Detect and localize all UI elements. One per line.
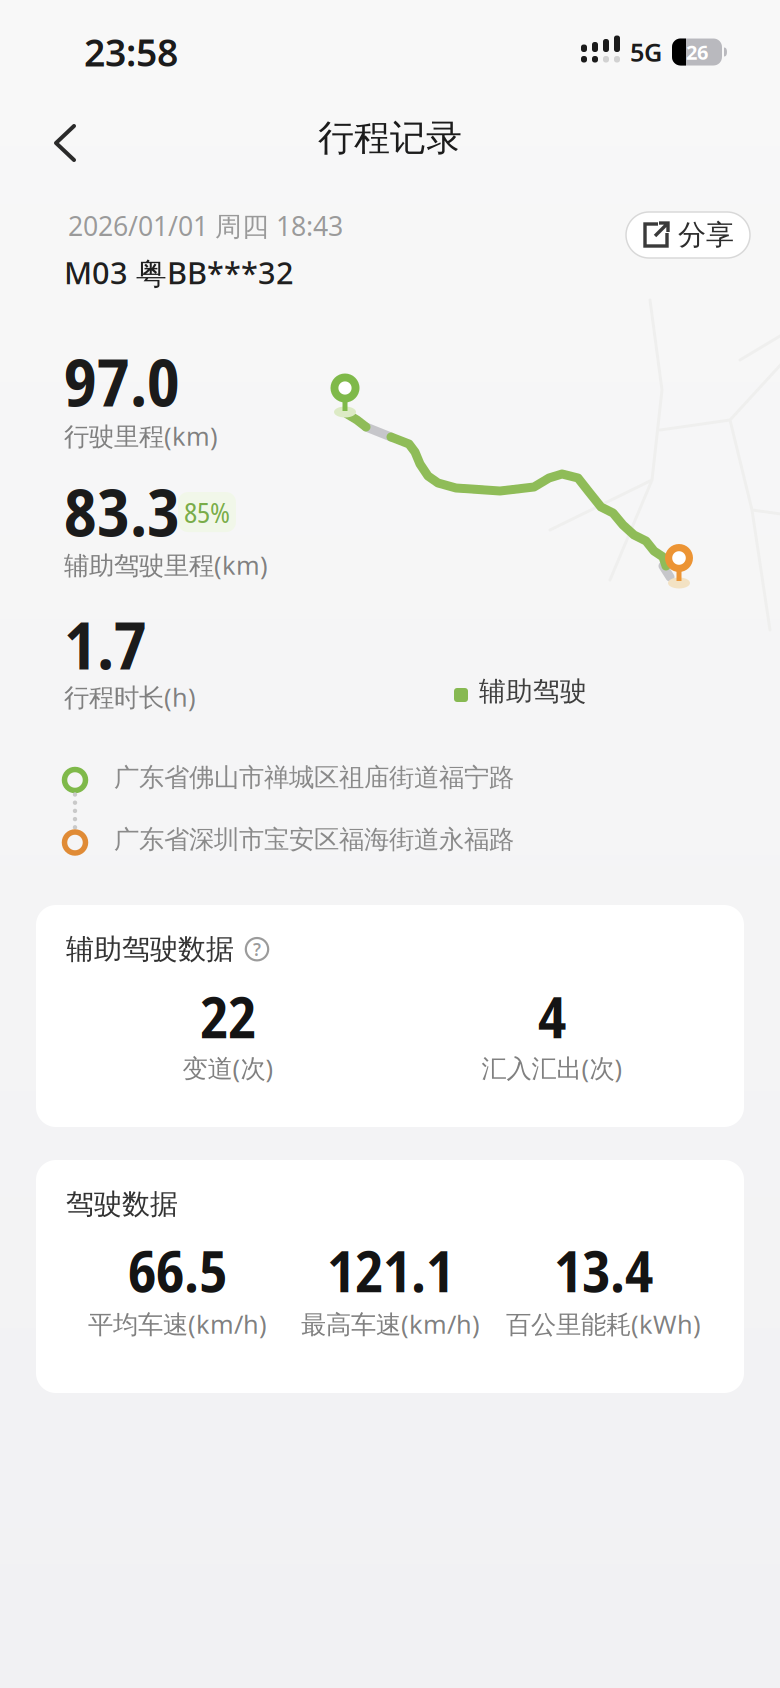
staticText: 平均车速(km/h): [88, 1307, 267, 1341]
staticText: 4: [538, 977, 566, 1055]
staticText: 最高车速(km/h): [301, 1307, 480, 1341]
staticText: 22: [200, 977, 256, 1055]
staticText: 广东省佛山市禅城区祖庙街道福宁路: [114, 762, 514, 793]
staticText: 1.7: [64, 599, 147, 689]
staticText: 汇入汇出(次): [481, 1051, 622, 1085]
staticText: 分享: [678, 218, 734, 252]
staticText: 85%: [184, 493, 230, 531]
staticText: 121.1: [327, 1231, 454, 1309]
staticText: 2026/01/01 周四 18:43: [68, 208, 343, 243]
staticText: 驾驶数据: [66, 1187, 178, 1221]
staticText: 5G: [630, 35, 662, 69]
staticText: 百公里能耗(kWh): [506, 1307, 701, 1341]
button[interactable]: 返回: [0, 108, 108, 178]
staticText: 26: [686, 39, 708, 65]
button[interactable]: 分享: [626, 212, 750, 258]
staticText: 辅助驾驶: [479, 675, 587, 708]
staticText: 广东省深圳市宝安区福海街道永福路: [114, 824, 514, 855]
staticText: 23:58: [84, 27, 178, 77]
staticText: 66.5: [128, 1231, 227, 1309]
staticText: 行程记录: [318, 116, 462, 160]
staticText: 辅助驾驶里程(km): [64, 548, 268, 582]
staticText: 13.4: [554, 1231, 653, 1309]
staticText: M03 粤BB***32: [64, 252, 294, 293]
button[interactable]: 辅助驾驶数据说明: [243, 935, 271, 963]
staticText: 变道(次): [182, 1051, 273, 1085]
staticText: 97.0: [64, 336, 180, 426]
staticText: ?: [253, 938, 261, 961]
staticText: 行驶里程(km): [64, 419, 218, 453]
staticText: 83.3: [64, 466, 180, 556]
staticText: 行程时长(h): [64, 680, 196, 714]
staticText: 辅助驾驶数据: [66, 932, 234, 966]
